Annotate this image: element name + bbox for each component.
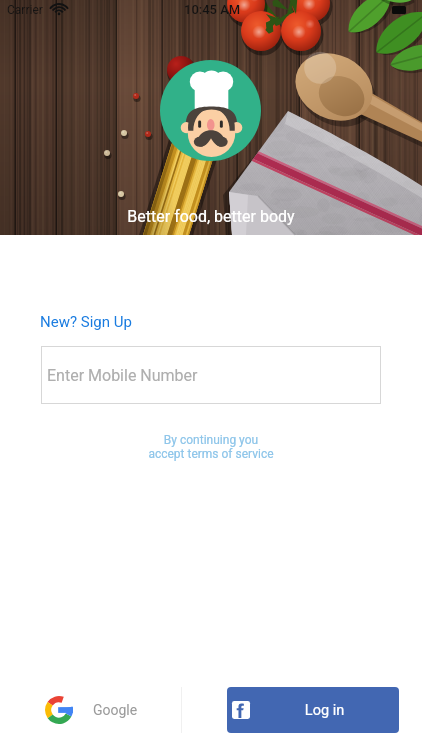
staticText: Enter Mobile Number <box>47 366 198 385</box>
staticText: Better food, better body <box>0 207 422 226</box>
button[interactable]: Log in <box>227 687 399 733</box>
staticText: Google <box>93 702 138 718</box>
staticText: Carrier <box>7 3 43 17</box>
button[interactable]: Google <box>0 687 181 733</box>
staticText: 10:45 AM <box>184 2 241 17</box>
staticText: Log in <box>250 702 399 719</box>
button[interactable]: By continuing you accept terms of servic… <box>0 433 422 461</box>
button[interactable]: Enter Mobile Number <box>41 346 381 404</box>
button[interactable]: New? Sign Up <box>40 313 132 331</box>
